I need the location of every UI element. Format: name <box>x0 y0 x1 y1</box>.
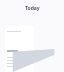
staticText: Today <box>25 5 40 12</box>
